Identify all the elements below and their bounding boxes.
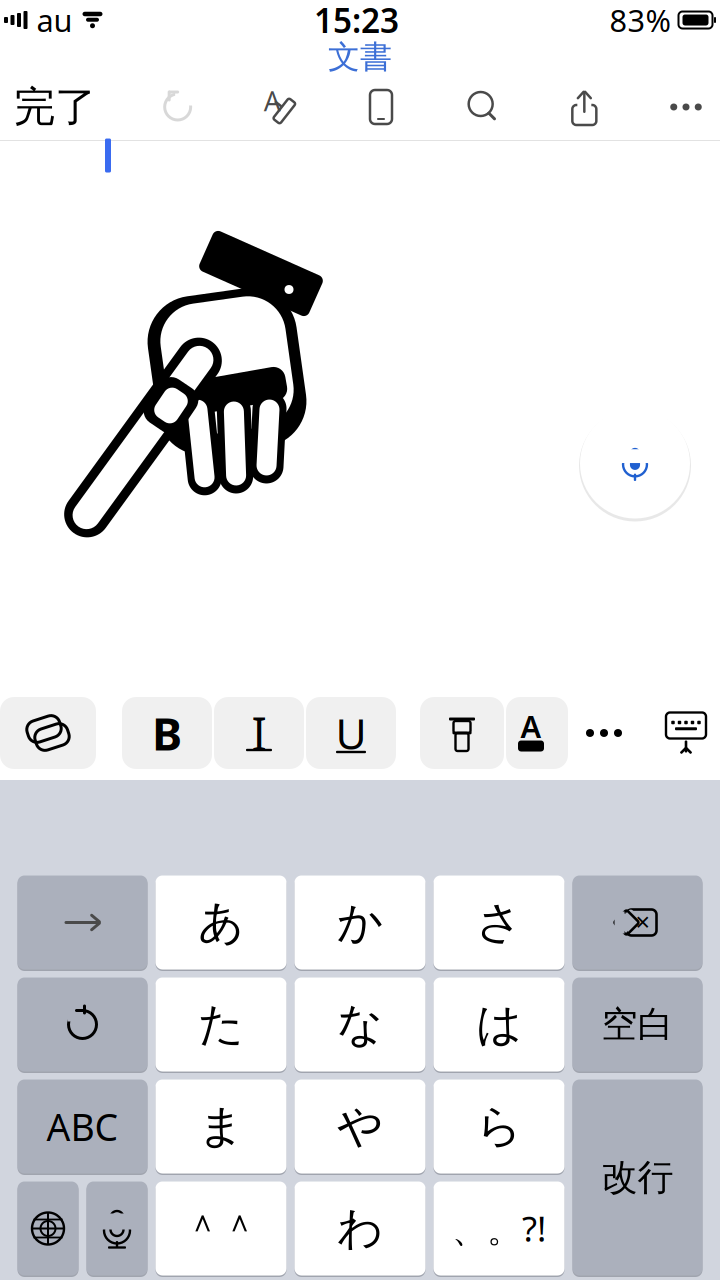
staticText: ＾＾ <box>184 1206 258 1251</box>
button[interactable]: な <box>294 977 425 1071</box>
button[interactable]: Underline <box>306 697 396 769</box>
button[interactable]: Undo <box>17 977 147 1071</box>
button[interactable]: Bold <box>122 697 212 769</box>
button[interactable]: Highlight <box>420 697 504 769</box>
staticText: は <box>476 997 522 1052</box>
staticText: A <box>264 83 281 119</box>
button[interactable]: Shapes <box>0 697 96 769</box>
button[interactable]: ら <box>433 1079 564 1173</box>
button[interactable]: Hide keyboard <box>648 697 720 769</box>
staticText: A <box>520 706 541 746</box>
staticText: 15:23 <box>314 0 399 42</box>
button[interactable]: ＾＾ <box>155 1181 286 1275</box>
button[interactable]: 空白 <box>572 977 702 1071</box>
button[interactable]: や <box>294 1079 425 1173</box>
staticText: ま <box>198 1099 244 1154</box>
staticText: 、。?! <box>452 1205 546 1252</box>
button[interactable]: Text color <box>506 697 568 769</box>
button[interactable]: Mobile view <box>355 81 407 133</box>
button[interactable]: Markup <box>253 81 305 133</box>
button[interactable]: Next character <box>17 875 147 969</box>
staticText: た <box>198 997 244 1052</box>
button[interactable]: 完了 <box>8 72 102 142</box>
button[interactable]: は <box>433 977 564 1071</box>
button[interactable]: た <box>155 977 286 1071</box>
staticText: 完了 <box>14 82 96 132</box>
staticText: な <box>337 997 383 1052</box>
button[interactable]: Return <box>572 1079 702 1275</box>
staticText: 改行 <box>601 1155 673 1200</box>
staticText: ABC <box>46 1102 118 1151</box>
button[interactable]: 、。?! <box>433 1181 564 1275</box>
button[interactable]: Search <box>457 81 509 133</box>
staticText: わ <box>337 1201 383 1256</box>
staticText: U <box>335 705 366 761</box>
staticText: 空白 <box>601 1002 673 1047</box>
staticText: さ <box>476 895 522 950</box>
button[interactable]: Dictate <box>577 405 693 521</box>
staticText: や <box>337 1099 383 1154</box>
button[interactable]: More formatting <box>568 697 640 769</box>
button[interactable]: Next keyboard <box>17 1181 78 1275</box>
button[interactable]: Italic <box>214 697 304 769</box>
button[interactable]: あ <box>155 875 286 969</box>
staticText: か <box>337 895 383 950</box>
button[interactable]: ABC <box>17 1079 147 1173</box>
staticText: あ <box>198 895 244 950</box>
button[interactable]: さ <box>433 875 564 969</box>
button[interactable]: Share <box>558 81 610 133</box>
button[interactable]: Dictation <box>86 1181 147 1275</box>
staticText: ら <box>476 1099 522 1154</box>
staticText: I <box>251 703 266 763</box>
staticText: 文書 <box>328 37 392 77</box>
button[interactable]: わ <box>294 1181 425 1275</box>
staticText: au <box>36 0 72 40</box>
button[interactable]: Undo <box>152 81 204 133</box>
button[interactable]: ま <box>155 1079 286 1173</box>
staticText: B <box>152 703 182 763</box>
button[interactable]: Delete <box>572 875 702 969</box>
staticText: 83% <box>609 0 670 40</box>
button[interactable]: More <box>660 81 712 133</box>
staticText: × <box>635 905 649 938</box>
button[interactable]: か <box>294 875 425 969</box>
